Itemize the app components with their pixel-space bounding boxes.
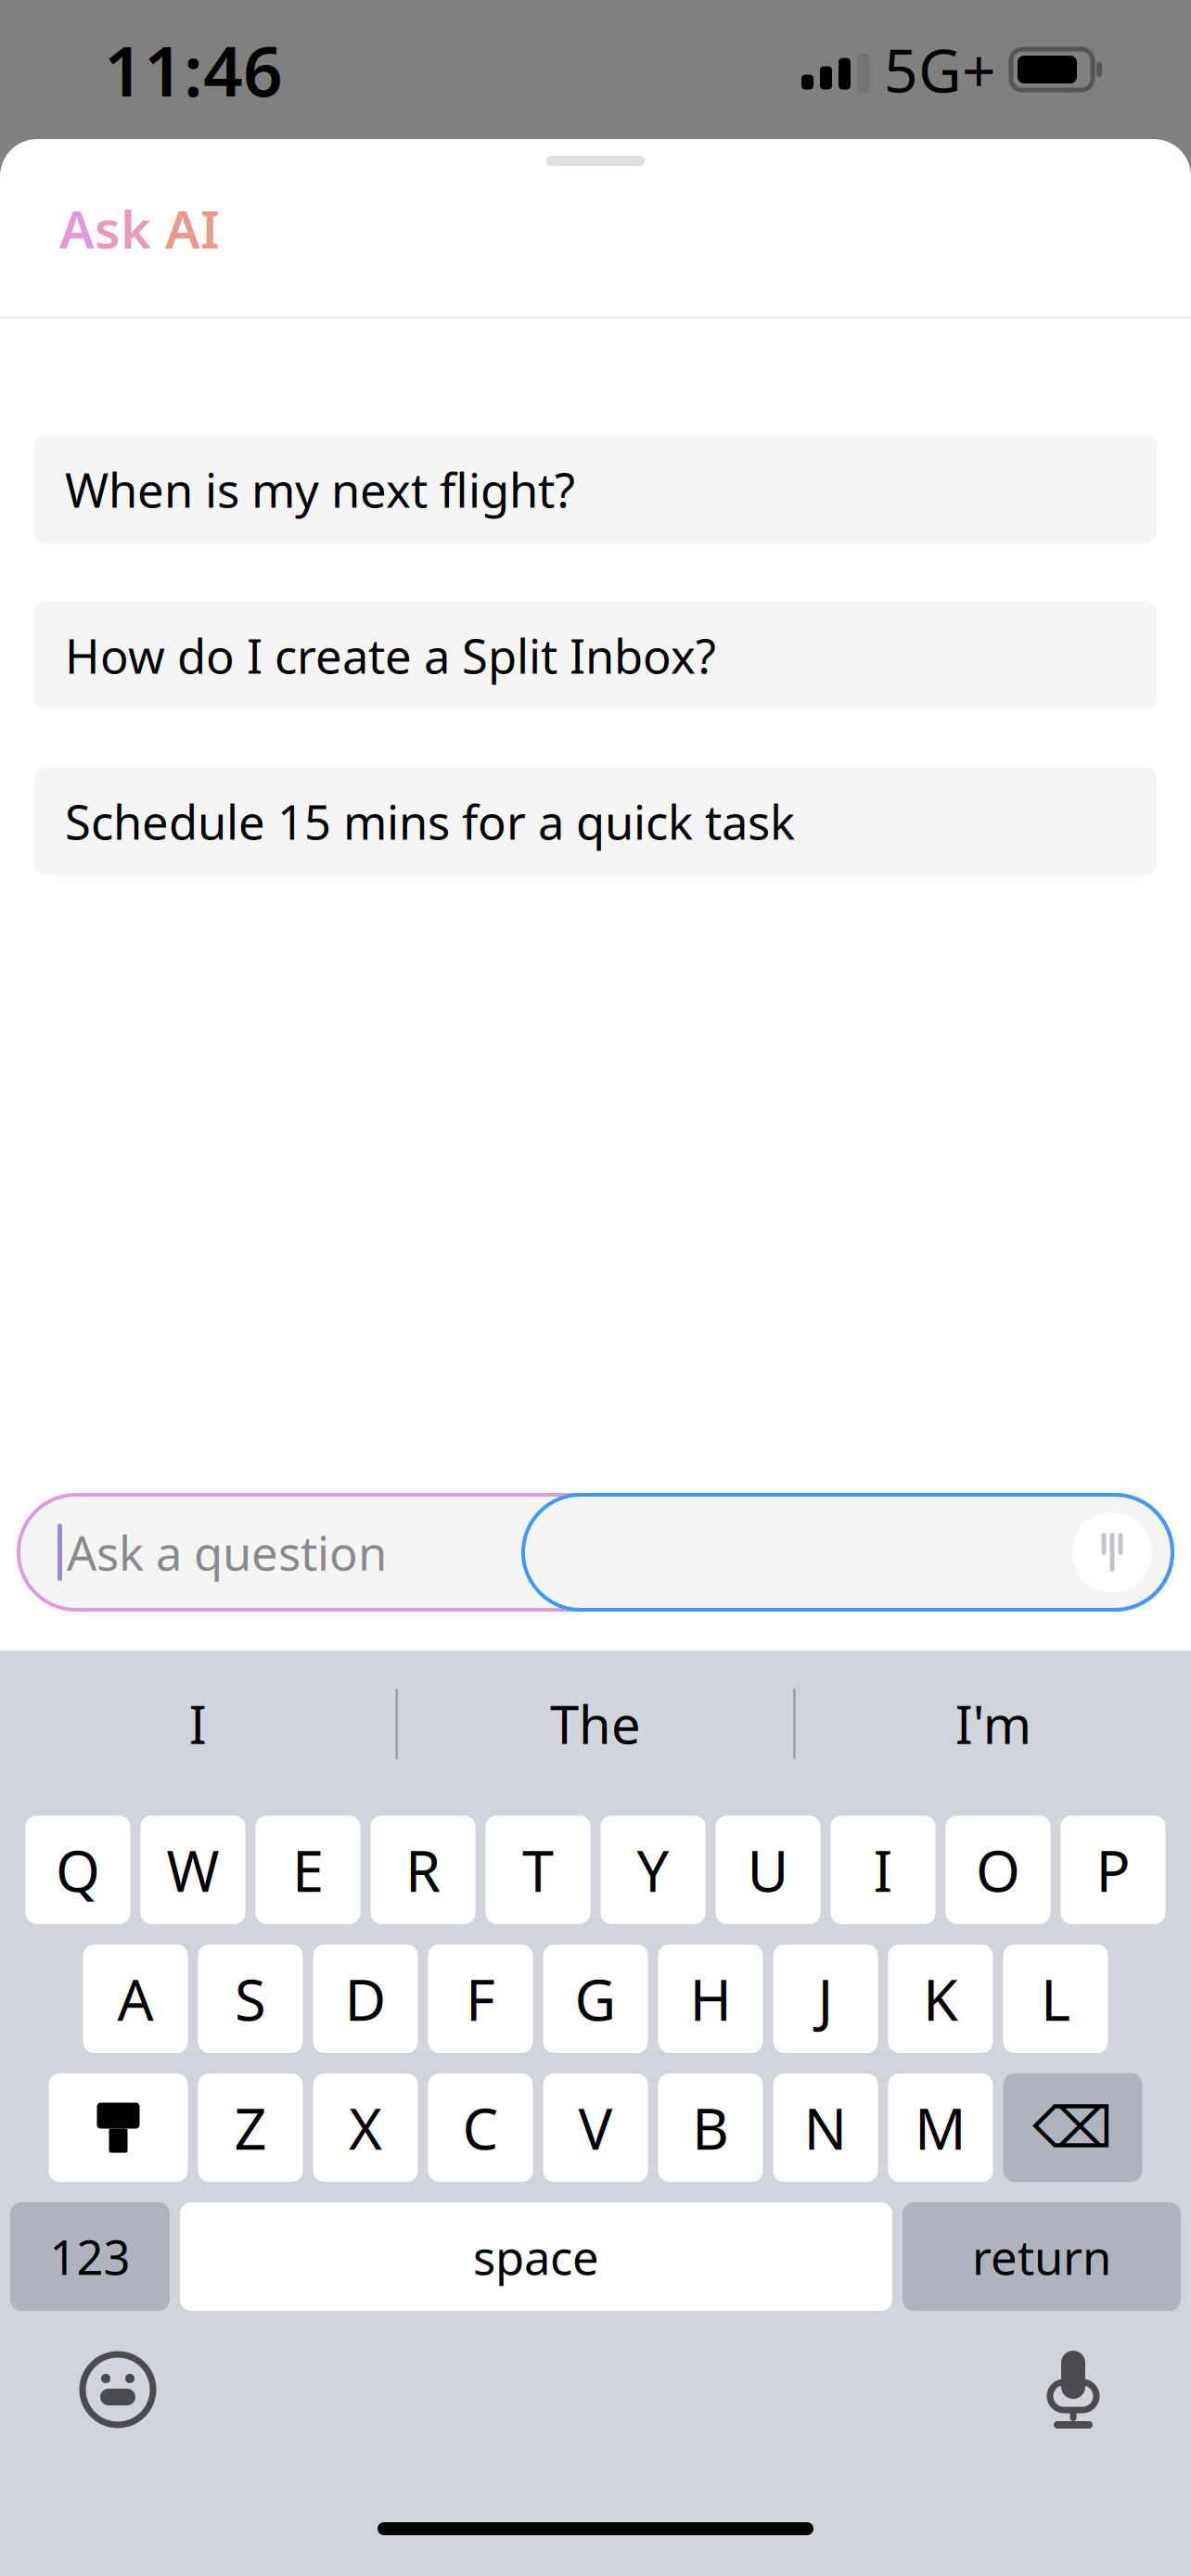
button[interactable]: V bbox=[543, 2073, 648, 2182]
button[interactable]: Send bbox=[1072, 1512, 1152, 1592]
button[interactable]: H bbox=[658, 1945, 763, 2053]
button[interactable]: R bbox=[371, 1816, 475, 1924]
staticText: E bbox=[292, 1832, 324, 1908]
button[interactable]: G bbox=[543, 1945, 648, 2053]
staticText: When is my next flight? bbox=[65, 458, 575, 521]
button[interactable]: X bbox=[313, 2073, 418, 2182]
button[interactable]: The bbox=[398, 1651, 793, 1797]
button[interactable]: J bbox=[773, 1945, 878, 2053]
staticText: Schedule 15 mins for a quick task bbox=[65, 790, 795, 853]
button[interactable]: I bbox=[0, 1651, 396, 1797]
button[interactable]: F bbox=[428, 1945, 533, 2053]
staticText: J bbox=[818, 1961, 833, 2037]
button[interactable]: Z bbox=[198, 2073, 303, 2182]
button[interactable]: return bbox=[903, 2202, 1181, 2311]
staticText: O bbox=[976, 1832, 1020, 1908]
staticText: K bbox=[923, 1961, 958, 2037]
button[interactable]: I'm bbox=[795, 1651, 1191, 1797]
staticText: P bbox=[1096, 1832, 1130, 1908]
staticText: X bbox=[349, 2090, 382, 2165]
staticText: ⌫ bbox=[1032, 2095, 1113, 2160]
button[interactable]: 123 bbox=[10, 2202, 170, 2311]
staticText: k bbox=[121, 194, 151, 263]
staticText: 11:46 bbox=[104, 24, 283, 116]
button[interactable]: Schedule 15 mins for a quick task bbox=[34, 767, 1157, 876]
button[interactable]: Q bbox=[26, 1816, 130, 1924]
button[interactable]: P bbox=[1061, 1816, 1165, 1924]
staticText: I bbox=[200, 194, 220, 263]
staticText: 5G+ bbox=[884, 30, 996, 109]
button[interactable]: B bbox=[658, 2073, 763, 2182]
button[interactable]: C bbox=[428, 2073, 533, 2182]
staticText: U bbox=[747, 1832, 789, 1908]
staticText: A bbox=[117, 1961, 154, 2037]
staticText: The bbox=[550, 1689, 641, 1758]
staticText: B bbox=[692, 2090, 729, 2165]
button[interactable]: When is my next flight? bbox=[34, 435, 1157, 544]
button[interactable]: S bbox=[198, 1945, 303, 2053]
staticText: W bbox=[166, 1832, 219, 1908]
button[interactable]: Emoji bbox=[67, 2339, 169, 2441]
staticText: How do I create a Split Inbox? bbox=[65, 624, 716, 687]
button[interactable]: N bbox=[773, 2073, 878, 2182]
staticText: F bbox=[466, 1961, 495, 2037]
staticText: A bbox=[59, 194, 95, 263]
staticText: T bbox=[522, 1832, 554, 1908]
staticText: H bbox=[690, 1961, 731, 2037]
button[interactable]: D bbox=[313, 1945, 418, 2053]
staticText: L bbox=[1041, 1961, 1070, 2037]
staticText: S bbox=[235, 1961, 266, 2037]
button[interactable]: K bbox=[888, 1945, 993, 2053]
button[interactable]: O bbox=[946, 1816, 1050, 1924]
button[interactable]: A bbox=[83, 1945, 188, 2053]
staticText: Z bbox=[234, 2090, 267, 2165]
button[interactable]: Delete bbox=[1003, 2073, 1142, 2182]
staticText: C bbox=[462, 2090, 499, 2165]
staticText: 123 bbox=[50, 2225, 130, 2288]
staticText: G bbox=[575, 1961, 616, 2037]
button[interactable]: W bbox=[141, 1816, 245, 1924]
button[interactable]: Y bbox=[601, 1816, 705, 1924]
staticText: return bbox=[972, 2225, 1111, 2288]
staticText: D bbox=[345, 1961, 386, 2037]
staticText: M bbox=[915, 2090, 967, 2165]
staticText: space bbox=[473, 2225, 599, 2288]
staticText: Q bbox=[56, 1832, 100, 1908]
button[interactable]: L bbox=[1003, 1945, 1108, 2053]
staticText: Ask a question bbox=[67, 1521, 387, 1584]
staticText: V bbox=[578, 2090, 613, 2165]
button[interactable]: Shift bbox=[49, 2073, 188, 2182]
button[interactable]: T bbox=[486, 1816, 590, 1924]
button[interactable]: I bbox=[831, 1816, 935, 1924]
button[interactable]: E bbox=[256, 1816, 360, 1924]
button[interactable]: space bbox=[180, 2202, 892, 2311]
staticText: R bbox=[405, 1832, 441, 1908]
staticText: N bbox=[804, 2090, 847, 2165]
staticText: A bbox=[151, 194, 200, 263]
button[interactable]: How do I create a Split Inbox? bbox=[34, 601, 1157, 710]
staticText: I bbox=[873, 1832, 893, 1908]
staticText: Y bbox=[637, 1832, 669, 1908]
button[interactable]: U bbox=[716, 1816, 820, 1924]
staticText: I bbox=[189, 1689, 207, 1758]
staticText: I'm bbox=[955, 1689, 1031, 1758]
button[interactable]: M bbox=[888, 2073, 993, 2182]
button[interactable]: Dictate bbox=[1022, 2339, 1124, 2441]
staticText: s bbox=[95, 194, 121, 263]
